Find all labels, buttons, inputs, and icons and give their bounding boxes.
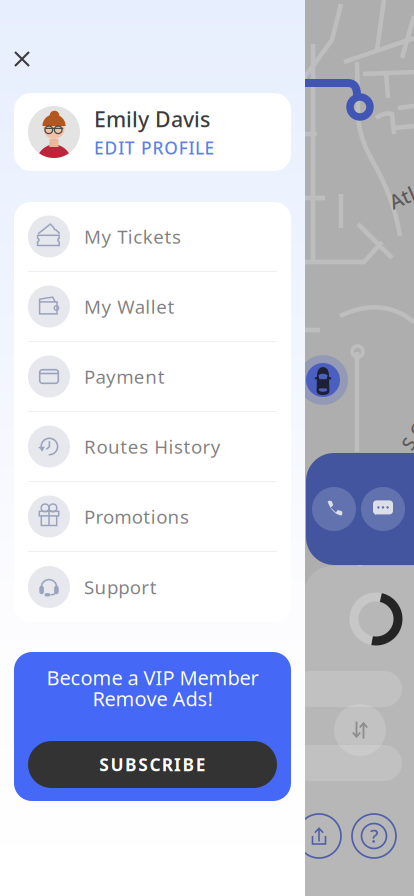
button[interactable]: Payment: [14, 342, 291, 412]
staticText: Remove Ads!: [92, 685, 212, 712]
button[interactable]: Close menu: [0, 37, 44, 81]
staticText: Atlas: [388, 180, 414, 207]
staticText: My Tickets: [84, 224, 181, 249]
staticText: Promotions: [84, 504, 189, 529]
staticText: Support: [84, 575, 157, 599]
staticText: Routes History: [84, 434, 221, 459]
button[interactable]: My Wallet: [14, 272, 291, 342]
button[interactable]: My Tickets: [14, 202, 291, 272]
staticText: Emily Davis: [94, 105, 210, 133]
button[interactable]: Emily Davis: [14, 93, 291, 171]
button[interactable]: Routes History: [14, 412, 291, 482]
staticText: Payment: [84, 364, 165, 389]
staticText: ?: [370, 823, 378, 848]
staticText: Become a VIP Member: [46, 664, 258, 691]
button[interactable]: Promotions: [14, 482, 291, 552]
button[interactable]: Support: [14, 552, 291, 622]
staticText: SUBSCRIBE: [99, 753, 206, 776]
staticText: EDIT PROFILE: [94, 136, 215, 159]
button[interactable]: SUBSCRIBE: [28, 741, 277, 788]
staticText: My Wallet: [84, 294, 175, 319]
